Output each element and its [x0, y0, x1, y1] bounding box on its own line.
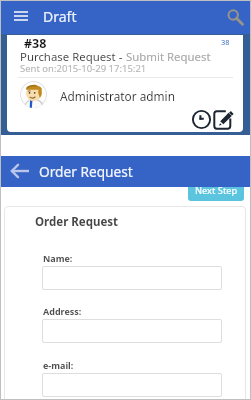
- staticText: #38: [24, 35, 47, 52]
- button[interactable]: Menu: [14, 11, 28, 21]
- button[interactable]: Edit: [213, 110, 233, 130]
- staticText: Name:: [43, 252, 73, 264]
- button[interactable]: History: [192, 110, 211, 129]
- staticText: Purchase Request -: [20, 49, 126, 65]
- button[interactable]: #38: [7, 35, 243, 132]
- staticText: Administrator admin: [60, 88, 175, 104]
- staticText: Draft: [43, 7, 77, 26]
- staticText: Next Step: [195, 184, 238, 197]
- staticText: Order Request: [35, 214, 119, 230]
- staticText: Address:: [43, 305, 82, 317]
- button[interactable]: Search: [226, 8, 244, 26]
- staticText: 38: [221, 37, 230, 47]
- button[interactable]: Next Step: [188, 180, 244, 201]
- staticText: Order Request: [39, 162, 133, 181]
- staticText: Sent on:2015-10-29 17:15:21: [20, 62, 147, 75]
- button[interactable]: [42, 373, 222, 397]
- staticText: Submit Request: [126, 49, 211, 65]
- button[interactable]: Back: [10, 165, 29, 177]
- button[interactable]: [42, 319, 222, 343]
- staticText: e-mail:: [43, 359, 74, 371]
- button[interactable]: [42, 266, 222, 290]
